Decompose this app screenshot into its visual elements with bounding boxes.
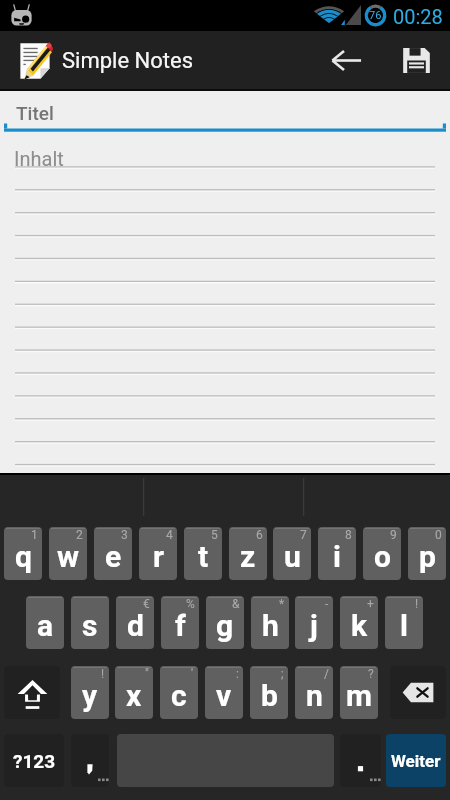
button[interactable]: s	[71, 596, 109, 649]
staticText: m	[346, 678, 372, 713]
button[interactable]: 0	[408, 527, 446, 580]
staticText: u	[284, 539, 301, 574]
staticText: s	[82, 608, 98, 643]
staticText: i	[333, 539, 341, 574]
button[interactable]: 8	[318, 527, 356, 580]
staticText: !	[101, 667, 105, 681]
staticText: 0	[435, 528, 442, 542]
button[interactable]: €	[116, 596, 154, 649]
button[interactable]: Enter	[386, 734, 446, 787]
staticText: *	[279, 597, 285, 611]
staticText: 3	[121, 528, 128, 542]
button[interactable]: 5	[184, 527, 222, 580]
button[interactable]: '	[160, 666, 198, 719]
button[interactable]: :	[205, 666, 243, 719]
button[interactable]: Shift	[4, 666, 60, 719]
staticText: Weiter	[391, 751, 441, 771]
button[interactable]: 9	[363, 527, 401, 580]
staticText: €	[143, 597, 150, 611]
button[interactable]: !	[71, 666, 109, 719]
button[interactable]: a	[26, 596, 64, 649]
staticText: t	[198, 539, 209, 574]
staticText: z	[240, 539, 256, 574]
staticText: /	[324, 667, 329, 681]
staticText: 7	[300, 528, 307, 542]
button[interactable]: !	[385, 596, 423, 649]
button[interactable]: 2	[49, 527, 87, 580]
staticText: ;	[281, 667, 284, 681]
button[interactable]: 3	[94, 527, 132, 580]
button[interactable]: Inhalt	[14, 147, 64, 170]
staticText: q	[15, 539, 32, 574]
button[interactable]: %	[161, 596, 199, 649]
staticText: 5	[211, 528, 218, 542]
staticText: '	[191, 667, 194, 681]
button[interactable]: 1	[4, 527, 42, 580]
button[interactable]: 4	[139, 527, 177, 580]
staticText: v	[216, 678, 232, 713]
staticText: y	[82, 678, 98, 713]
staticText: n	[306, 678, 323, 713]
button[interactable]: &	[206, 596, 244, 649]
button[interactable]: *	[251, 596, 289, 649]
staticText: ?123	[13, 750, 56, 772]
staticText: r	[153, 539, 164, 574]
button[interactable]: 6	[229, 527, 267, 580]
staticText: o	[374, 539, 391, 574]
button[interactable]: Back	[314, 31, 378, 89]
staticText: "	[145, 667, 149, 681]
staticText: j	[310, 608, 318, 643]
staticText: 6	[256, 528, 263, 542]
button[interactable]: +	[340, 596, 378, 649]
button[interactable]: 7	[273, 527, 311, 580]
staticText: l	[400, 608, 408, 643]
staticText: :	[236, 667, 239, 681]
staticText: g	[216, 608, 234, 643]
staticText: x	[126, 678, 142, 713]
staticText: 1	[31, 528, 38, 542]
staticText: 8	[345, 528, 352, 542]
staticText: b	[261, 678, 278, 713]
staticText: a	[37, 608, 54, 643]
staticText: 4	[166, 528, 173, 542]
staticText: f	[175, 608, 186, 643]
staticText: -	[325, 597, 329, 611]
staticText: &	[232, 597, 240, 611]
staticText: ?	[368, 667, 374, 681]
staticText: h	[262, 608, 279, 643]
button[interactable]: ?	[340, 666, 378, 719]
staticText: 00:28	[393, 5, 443, 28]
button[interactable]: -	[295, 596, 333, 649]
button[interactable]: /	[295, 666, 333, 719]
staticText: d	[127, 608, 144, 643]
button[interactable]: Symbols	[4, 734, 64, 787]
staticText: w	[57, 539, 80, 574]
button[interactable]: Delete	[390, 666, 446, 719]
staticText: %	[186, 597, 195, 611]
button[interactable]: ;	[250, 666, 288, 719]
staticText: e	[105, 539, 122, 574]
staticText: !	[415, 597, 419, 611]
staticText: 9	[390, 528, 397, 542]
staticText: k	[351, 608, 368, 643]
button[interactable]: Titel	[16, 102, 54, 124]
staticText: 2	[76, 528, 83, 542]
button[interactable]: Save	[387, 31, 445, 89]
staticText: 76	[369, 9, 382, 22]
staticText: p	[419, 539, 436, 574]
staticText: +	[367, 597, 374, 611]
button[interactable]: .	[340, 734, 381, 787]
staticText: c	[171, 678, 187, 713]
button[interactable]: ,	[71, 734, 109, 787]
button[interactable]: "	[115, 666, 153, 719]
staticText: Simple Notes	[62, 48, 193, 74]
